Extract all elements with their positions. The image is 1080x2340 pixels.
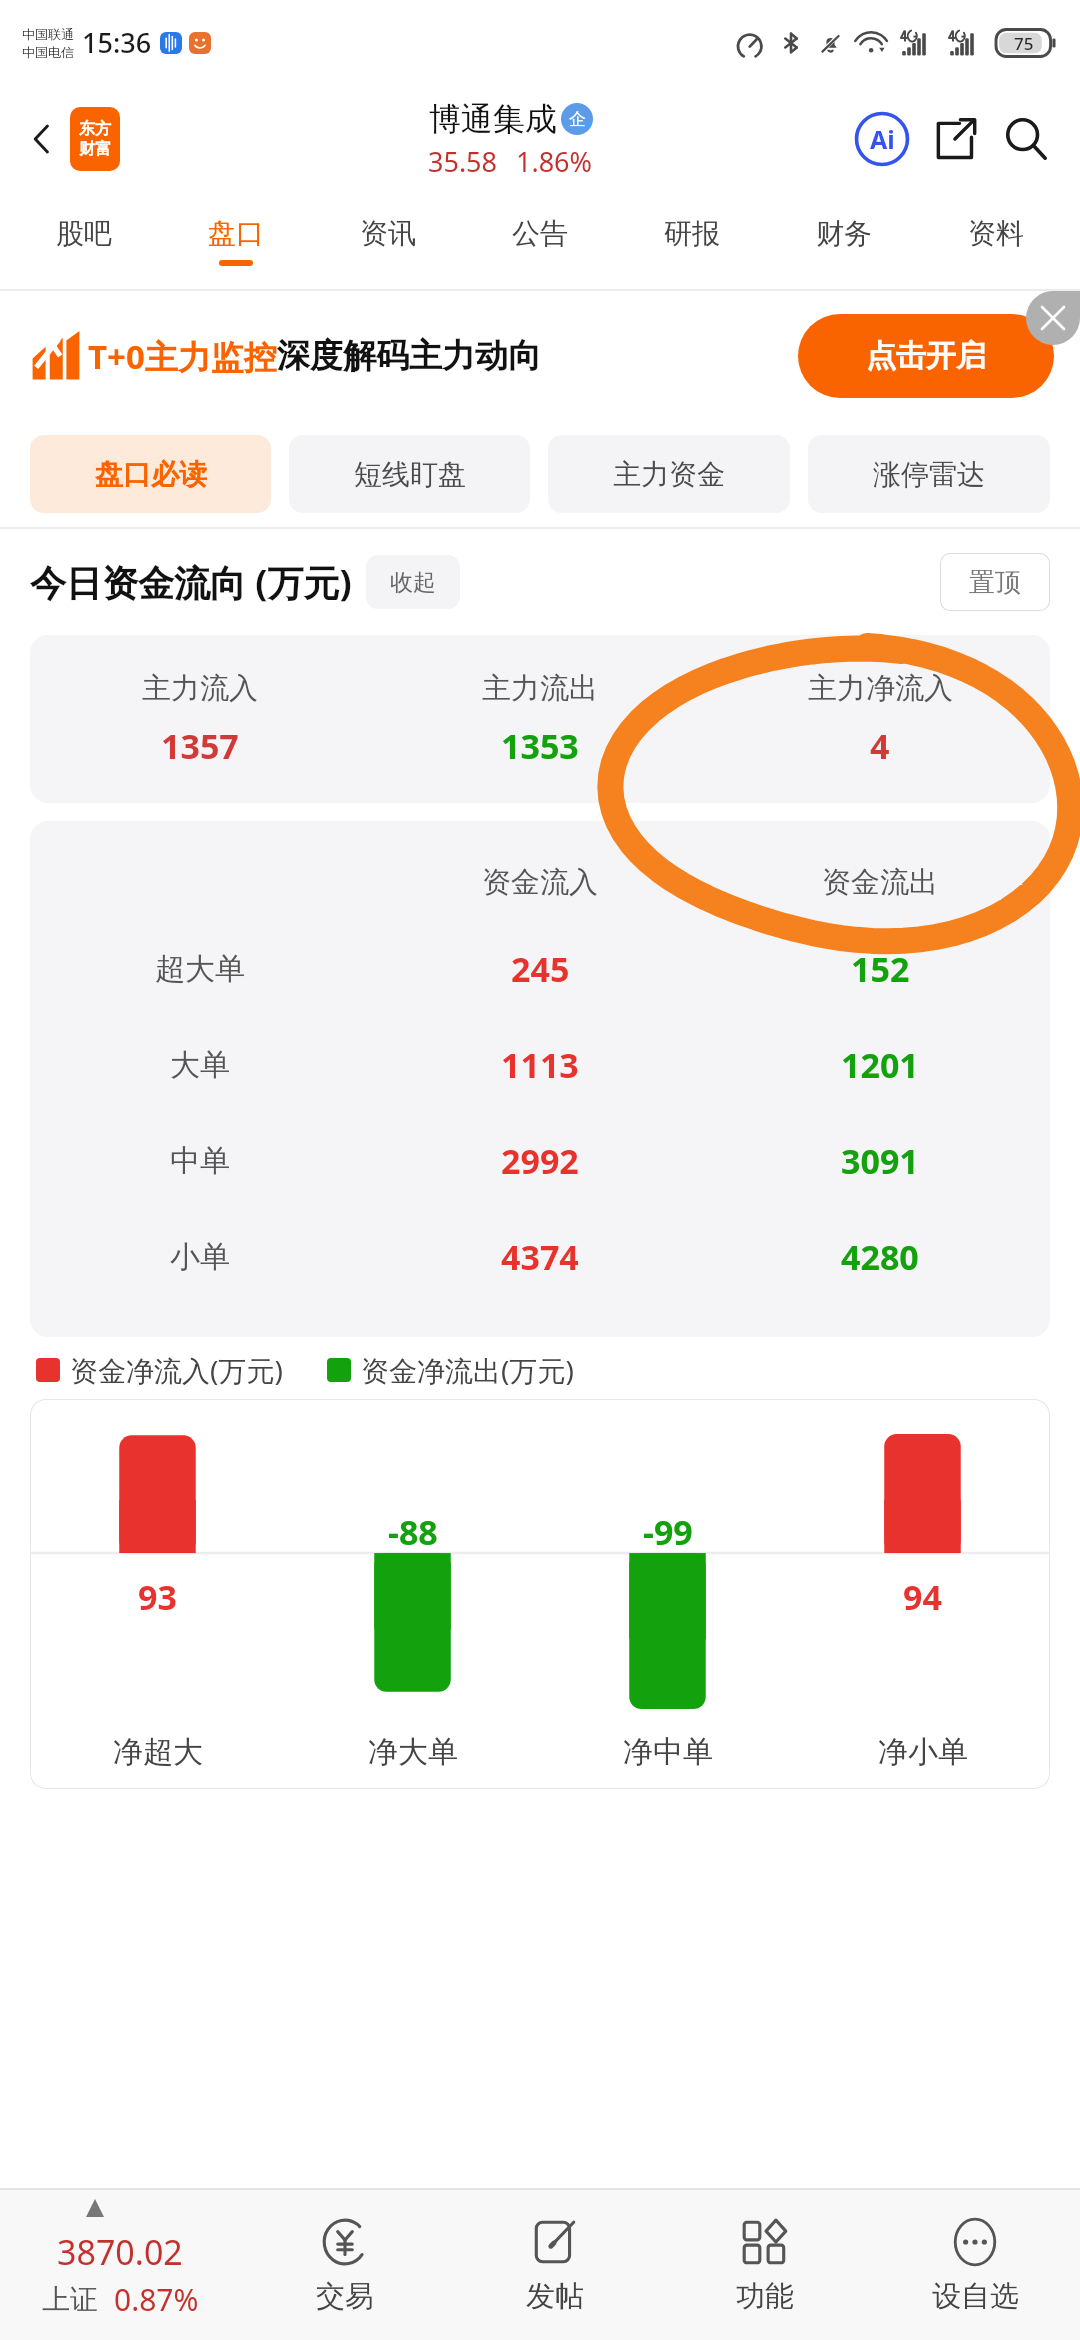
staticText: 财富: [79, 139, 111, 159]
staticText: 盘口: [208, 216, 264, 251]
button[interactable]: 主力资金: [548, 435, 790, 513]
staticText: 财务: [816, 216, 872, 251]
staticText: 股吧: [56, 216, 112, 251]
button[interactable]: 东方财富: [70, 107, 120, 171]
staticText: 0.87%: [114, 2279, 199, 2320]
staticText: 博通集成: [429, 99, 557, 139]
button[interactable]: 设自选: [870, 2190, 1080, 2340]
staticText: 净小单: [878, 1733, 968, 1771]
button[interactable]: 功能: [660, 2190, 870, 2340]
button[interactable]: 盘口: [160, 193, 312, 289]
staticText: 主力净流入: [808, 670, 953, 707]
button[interactable]: 发帖: [450, 2190, 660, 2340]
staticText: 小单: [170, 1238, 230, 1276]
staticText: 东方: [79, 119, 111, 139]
staticText: 4: [870, 723, 890, 769]
staticText: 1357: [161, 723, 239, 769]
staticText: 主力流入: [142, 670, 258, 707]
button[interactable]: 研报: [616, 193, 768, 289]
staticText: 资料: [968, 216, 1024, 251]
staticText: 中国联通: [22, 26, 74, 42]
button[interactable]: 3870.02: [0, 2211, 240, 2320]
staticText: 1113: [501, 1042, 579, 1088]
staticText: 研报: [664, 216, 720, 251]
button[interactable]: 资讯: [312, 193, 464, 289]
staticText: 75: [1014, 32, 1034, 55]
staticText: 3870.02: [57, 2229, 183, 2275]
staticText: 152: [851, 946, 910, 992]
button[interactable]: Back: [14, 111, 70, 167]
button[interactable]: 公告: [464, 193, 616, 289]
button[interactable]: 财务: [768, 193, 920, 289]
staticText: 93: [138, 1574, 177, 1620]
staticText: 盘口必读: [95, 457, 207, 492]
button[interactable]: 超大单: [30, 921, 1050, 1017]
staticText: 1.86%: [516, 143, 593, 180]
staticText: 2992: [501, 1138, 579, 1184]
staticText: 4374: [501, 1234, 579, 1280]
button[interactable]: 中单: [30, 1113, 1050, 1209]
staticText: 超大单: [155, 950, 245, 988]
staticText: 今日资金流向 (万元): [30, 558, 352, 607]
staticText: -88: [388, 1509, 438, 1555]
button[interactable]: Search: [990, 103, 1062, 175]
staticText: 中单: [170, 1142, 230, 1180]
staticText: 资讯: [360, 216, 416, 251]
button[interactable]: 点击开启: [798, 314, 1054, 398]
staticText: 涨停雷达: [873, 457, 985, 492]
button[interactable]: 交易: [240, 2190, 450, 2340]
staticText: 35.58: [428, 143, 498, 180]
button[interactable]: 大单: [30, 1017, 1050, 1113]
staticText: 资金流出: [822, 864, 938, 901]
staticText: 94: [903, 1574, 942, 1620]
button[interactable]: 资料: [920, 193, 1072, 289]
staticText: 净大单: [368, 1733, 458, 1771]
button[interactable]: 股吧: [8, 193, 160, 289]
staticText: 置顶: [969, 566, 1021, 599]
staticText: 资金流入: [482, 864, 598, 901]
button[interactable]: Close ad: [1026, 291, 1080, 345]
staticText: 短线盯盘: [354, 457, 466, 492]
staticText: 3091: [841, 1138, 919, 1184]
button[interactable]: 盘口必读: [30, 435, 271, 513]
staticText: 深度解码主力动向: [277, 335, 541, 377]
staticText: 点击开启: [866, 337, 986, 375]
staticText: 收起: [390, 568, 436, 597]
staticText: 净中单: [623, 1733, 713, 1771]
button[interactable]: AI: [846, 103, 918, 175]
staticText: 企: [569, 109, 586, 130]
button[interactable]: 收起: [366, 555, 460, 609]
staticText: 中国电信: [22, 44, 74, 60]
staticText: 公告: [512, 216, 568, 251]
staticText: 主力流出: [482, 670, 598, 707]
button[interactable]: Share: [918, 103, 990, 175]
staticText: 资金净流入(万元): [70, 1351, 283, 1389]
staticText: 资金净流出(万元): [361, 1351, 574, 1389]
staticText: -99: [643, 1509, 693, 1555]
button[interactable]: 主力流入: [30, 635, 1050, 803]
button[interactable]: 小单: [30, 1209, 1050, 1305]
staticText: 245: [511, 946, 570, 992]
staticText: 大单: [170, 1046, 230, 1084]
staticText: Ai: [870, 122, 895, 156]
staticText: 1201: [841, 1042, 919, 1088]
staticText: 上证: [42, 2282, 98, 2317]
button[interactable]: 涨停雷达: [808, 435, 1050, 513]
staticText: 4280: [841, 1234, 919, 1280]
button[interactable]: 置顶: [940, 553, 1050, 611]
button[interactable]: T+0主力监控: [0, 291, 1080, 421]
staticText: T+0主力监控: [88, 334, 277, 379]
staticText: 设自选: [932, 2278, 1019, 2315]
staticText: 净超大: [113, 1733, 203, 1771]
staticText: 主力资金: [613, 457, 725, 492]
button[interactable]: 93: [30, 1399, 1050, 1789]
button[interactable]: 短线盯盘: [289, 435, 530, 513]
staticText: 发帖: [526, 2278, 584, 2315]
staticText: 交易: [316, 2278, 374, 2315]
staticText: 1353: [501, 723, 579, 769]
staticText: 15:36: [82, 24, 152, 61]
staticText: 功能: [736, 2278, 794, 2315]
